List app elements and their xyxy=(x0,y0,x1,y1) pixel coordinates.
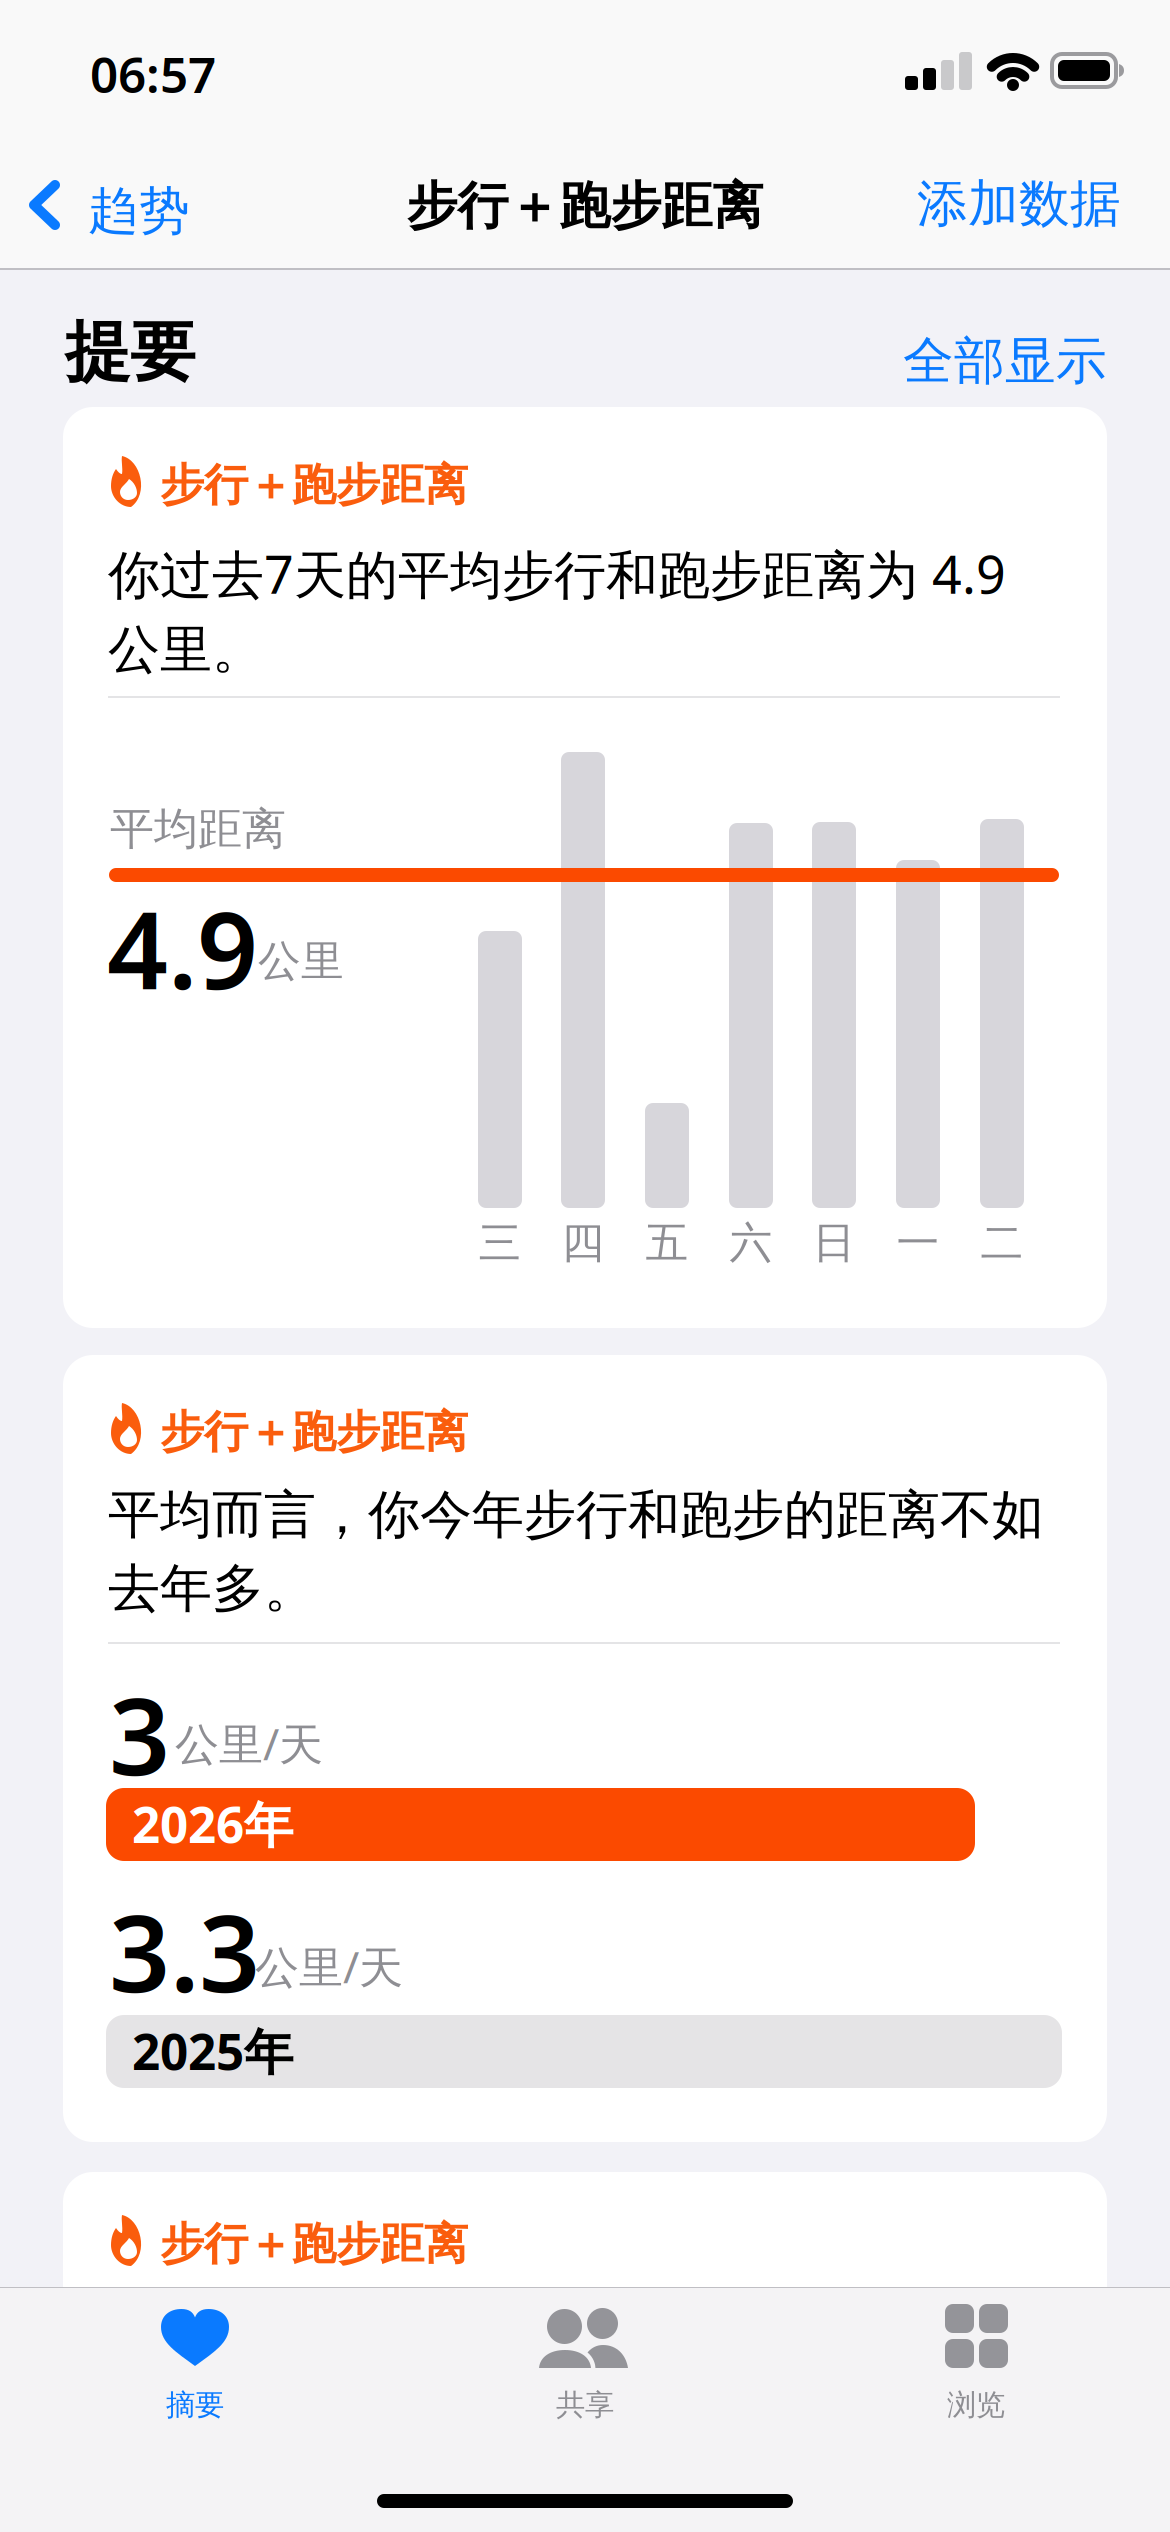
staticText: 公里/天 xyxy=(175,1714,323,1772)
button[interactable]: 浏览 xyxy=(815,2287,1137,2447)
staticText: 趋势 xyxy=(88,180,190,242)
button[interactable]: 共享 xyxy=(424,2287,746,2447)
staticText: 二 xyxy=(980,1217,1023,1269)
staticText: 步行＋跑步距离 xyxy=(160,2217,468,2271)
staticText: 你过去7天的平均步行和跑步距离为 4.9 公里。 xyxy=(108,539,1006,682)
staticText: 2025年 xyxy=(132,2018,293,2083)
staticText: 一 xyxy=(896,1217,939,1269)
staticText: 提要 xyxy=(65,312,195,392)
staticText: 06:57 xyxy=(90,41,216,106)
button[interactable]: 步行＋跑步距离 xyxy=(63,2172,1107,2332)
staticText: 全部显示 xyxy=(903,330,1107,392)
staticText: 3 xyxy=(109,1663,170,1805)
staticText: 五 xyxy=(645,1217,688,1269)
staticText: 共享 xyxy=(556,2387,614,2423)
staticText: 四 xyxy=(561,1217,604,1269)
staticText: 公里 xyxy=(258,935,344,987)
staticText: 步行＋跑步距离 xyxy=(160,458,468,512)
staticText: 浏览 xyxy=(947,2387,1005,2423)
button[interactable]: 添加数据 xyxy=(917,140,1170,268)
staticText: 六 xyxy=(729,1217,772,1269)
staticText: 公里/天 xyxy=(255,1937,403,1995)
staticText: 步行＋跑步距离 xyxy=(160,1405,468,1459)
staticText: 步行＋跑步距离 xyxy=(406,175,763,237)
staticText: 三 xyxy=(478,1217,521,1269)
button[interactable]: 步行＋跑步距离 xyxy=(63,1355,1107,2142)
button[interactable]: 摘要 xyxy=(34,2287,356,2447)
button[interactable]: 趋势 xyxy=(0,140,200,268)
staticText: 4.9 xyxy=(107,877,258,1019)
staticText: 添加数据 xyxy=(917,173,1121,235)
button[interactable]: 全部显示 xyxy=(903,330,1107,392)
button[interactable]: 步行＋跑步距离 xyxy=(63,407,1107,1328)
staticText: 3.3 xyxy=(109,1880,260,2022)
staticText: 平均距离 xyxy=(110,802,286,856)
staticText: 日 xyxy=(812,1217,855,1269)
staticText: 摘要 xyxy=(166,2387,224,2423)
staticText: 平均而言，你今年步行和跑步的距离不如 去年多。 xyxy=(108,1483,1044,1621)
staticText: 2026年 xyxy=(132,1791,293,1856)
